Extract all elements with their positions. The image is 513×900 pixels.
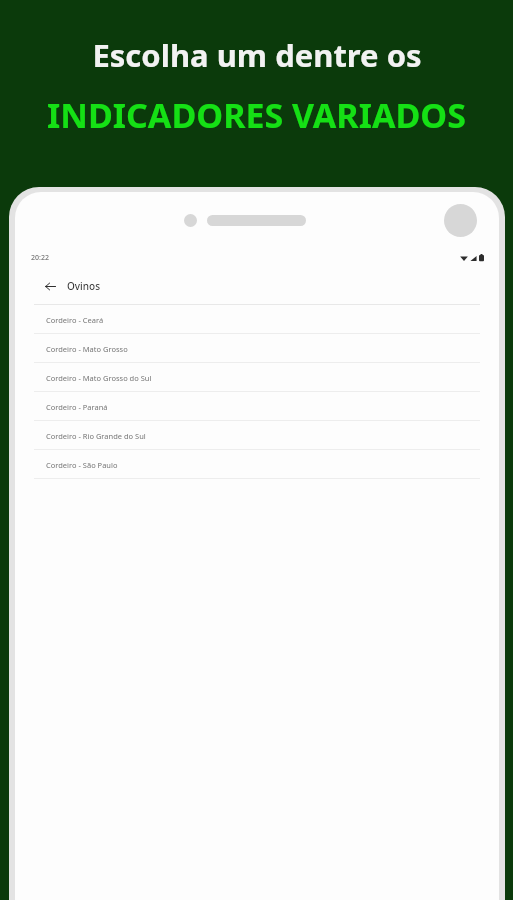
staticText: Cordeiro - Paraná — [46, 402, 108, 412]
staticText: Cordeiro - Mato Grosso do Sul — [46, 373, 152, 383]
staticText: 20:22 — [31, 253, 49, 263]
button[interactable]: Cordeiro - São Paulo — [15, 450, 499, 479]
button[interactable]: Back — [39, 275, 61, 297]
staticText: Cordeiro - São Paulo — [46, 460, 118, 470]
button[interactable]: Cordeiro - Rio Grande do Sul — [15, 421, 499, 450]
staticText: INDICADORES VARIADOS — [47, 92, 466, 138]
button[interactable]: Cordeiro - Paraná — [15, 392, 499, 421]
staticText: Ovinos — [67, 279, 101, 293]
staticText: Escolha um dentre os — [92, 34, 422, 76]
button[interactable]: Cordeiro - Ceará — [15, 305, 499, 334]
button[interactable]: Cordeiro - Mato Grosso — [15, 334, 499, 363]
button[interactable]: Cordeiro - Mato Grosso do Sul — [15, 363, 499, 392]
staticText: Cordeiro - Rio Grande do Sul — [46, 431, 146, 441]
staticText: Cordeiro - Mato Grosso — [46, 344, 128, 354]
staticText: Cordeiro - Ceará — [46, 315, 104, 325]
